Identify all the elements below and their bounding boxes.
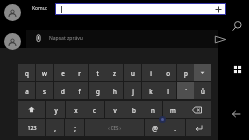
button[interactable]: u bbox=[124, 64, 141, 81]
staticText: a bbox=[25, 87, 29, 95]
button[interactable]: d bbox=[54, 82, 71, 99]
button[interactable]: r bbox=[71, 64, 88, 81]
staticText: c bbox=[93, 106, 96, 114]
staticText: w bbox=[42, 69, 47, 77]
button[interactable]: w bbox=[36, 64, 53, 81]
staticText: ů bbox=[201, 87, 205, 95]
staticText: Komu: bbox=[32, 5, 48, 12]
button[interactable]: Send bbox=[214, 33, 227, 46]
staticText: ´ bbox=[185, 87, 187, 95]
staticText: ‹ CES › bbox=[108, 125, 121, 131]
button[interactable]: Backspace bbox=[182, 101, 211, 118]
button[interactable]: Enter bbox=[186, 119, 211, 136]
button[interactable]: ů bbox=[194, 82, 211, 99]
button[interactable]: Your avatar bbox=[4, 33, 21, 50]
staticText: x bbox=[74, 106, 78, 114]
staticText: s bbox=[43, 87, 46, 95]
button[interactable] bbox=[26, 30, 218, 48]
staticText: v bbox=[113, 106, 117, 114]
staticText: z bbox=[113, 69, 116, 77]
staticText: @ bbox=[152, 124, 158, 132]
button[interactable]: f bbox=[71, 82, 88, 99]
button[interactable]: h bbox=[106, 82, 123, 99]
staticText: r bbox=[78, 69, 81, 77]
staticText: e bbox=[61, 69, 65, 77]
button[interactable]: o bbox=[159, 64, 176, 81]
button[interactable]: v bbox=[105, 101, 124, 118]
staticText: u bbox=[131, 69, 135, 77]
button[interactable]: , bbox=[46, 119, 64, 136]
staticText: g bbox=[96, 87, 100, 95]
staticText: 123 bbox=[27, 124, 37, 131]
button[interactable]: n bbox=[143, 101, 162, 118]
staticText: f bbox=[78, 87, 81, 95]
button[interactable]: m bbox=[163, 101, 182, 118]
button[interactable]: More options bbox=[194, 64, 211, 81]
button[interactable]: Start bbox=[230, 62, 245, 77]
button[interactable]: z bbox=[106, 64, 123, 81]
staticText: p bbox=[184, 69, 188, 77]
staticText: k bbox=[149, 87, 153, 95]
staticText: t bbox=[96, 69, 99, 77]
button[interactable]: 123 bbox=[18, 119, 45, 136]
button[interactable]: Shift bbox=[18, 101, 45, 118]
button[interactable]: b bbox=[124, 101, 143, 118]
button[interactable]: @ bbox=[145, 119, 165, 136]
button[interactable]: ; bbox=[65, 119, 84, 136]
button[interactable]: c bbox=[85, 101, 104, 118]
staticText: m bbox=[170, 106, 176, 114]
staticText: o bbox=[166, 69, 170, 77]
staticText: , bbox=[54, 124, 56, 132]
button[interactable]: p bbox=[177, 64, 194, 81]
button[interactable]: l bbox=[159, 82, 176, 99]
staticText: Napsat zprávu bbox=[49, 35, 83, 42]
button[interactable]: Attach bbox=[33, 33, 44, 44]
button[interactable]: . bbox=[165, 119, 185, 136]
button[interactable]: t bbox=[89, 64, 106, 81]
staticText: n bbox=[151, 106, 155, 114]
button[interactable]: e bbox=[54, 64, 71, 81]
staticText: h bbox=[113, 87, 117, 95]
button[interactable]: y bbox=[46, 101, 65, 118]
staticText: . bbox=[174, 124, 176, 132]
staticText: q bbox=[25, 69, 29, 77]
button[interactable]: Recipient avatar bbox=[4, 4, 21, 21]
button[interactable]: k bbox=[142, 82, 159, 99]
button[interactable]: Back bbox=[230, 107, 244, 121]
button[interactable]: ´ bbox=[177, 82, 194, 99]
button[interactable]: Search bbox=[230, 20, 243, 33]
button[interactable]: j bbox=[124, 82, 141, 99]
button[interactable]: a bbox=[18, 82, 35, 99]
other: Add recipient bbox=[215, 6, 222, 13]
staticText: l bbox=[167, 87, 169, 95]
button[interactable]: g bbox=[89, 82, 106, 99]
staticText: y bbox=[54, 106, 58, 114]
staticText: b bbox=[132, 106, 136, 114]
staticText: j bbox=[132, 87, 134, 95]
button[interactable]: q bbox=[18, 64, 35, 81]
button[interactable]: s bbox=[36, 82, 53, 99]
staticText: ; bbox=[74, 124, 76, 132]
button[interactable]: x bbox=[66, 101, 85, 118]
staticText: i bbox=[150, 69, 152, 77]
button[interactable]: Space bbox=[85, 119, 144, 136]
button[interactable]: Add recipient bbox=[55, 3, 226, 15]
button[interactable]: i bbox=[142, 64, 159, 81]
staticText: d bbox=[61, 87, 65, 95]
